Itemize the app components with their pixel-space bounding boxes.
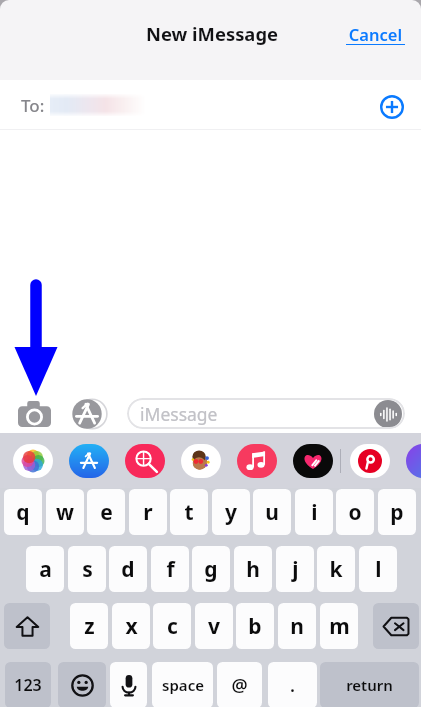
button[interactable]: v	[195, 603, 233, 649]
button[interactable]: j	[276, 546, 314, 592]
button[interactable]: a	[26, 546, 64, 592]
button[interactable]: Backspace	[373, 603, 419, 649]
button[interactable]: o	[336, 489, 374, 535]
staticText: New iMessage	[146, 21, 278, 46]
staticText: v	[208, 612, 220, 641]
button[interactable]	[350, 444, 390, 478]
staticText: m	[329, 612, 350, 641]
button[interactable]: u	[253, 489, 291, 535]
button[interactable]: 123	[5, 662, 51, 707]
button[interactable]: t	[170, 489, 208, 535]
staticText: @	[231, 673, 248, 698]
staticText: i	[311, 498, 318, 527]
staticText: q	[16, 498, 30, 527]
staticText: iMessage	[140, 402, 218, 426]
button[interactable]: Record audio	[374, 400, 402, 428]
staticText: b	[248, 612, 262, 641]
staticText: space	[162, 675, 204, 695]
button[interactable]: return	[320, 662, 419, 707]
staticText: c	[167, 612, 178, 641]
button[interactable]: s	[68, 546, 106, 592]
button[interactable]: Dictation	[110, 662, 147, 707]
button[interactable]	[69, 444, 109, 478]
button[interactable]: d	[109, 546, 147, 592]
staticText: h	[246, 555, 260, 584]
staticText: .	[290, 673, 295, 698]
staticText: j	[292, 555, 299, 584]
button[interactable]: Camera	[16, 396, 52, 432]
staticText: To:	[21, 94, 45, 117]
button[interactable]	[237, 444, 277, 478]
button[interactable]: e	[87, 489, 125, 535]
button[interactable]	[181, 444, 221, 478]
button[interactable]: x	[112, 603, 150, 649]
button[interactable]: b	[236, 603, 274, 649]
button[interactable]: z	[70, 603, 108, 649]
staticText: z	[84, 612, 95, 641]
button[interactable]: r	[129, 489, 167, 535]
button[interactable]: f	[151, 546, 189, 592]
button[interactable]: space	[152, 662, 213, 707]
staticText: a	[39, 555, 52, 584]
button[interactable]: iMessage	[127, 398, 405, 429]
staticText: w	[56, 498, 74, 527]
button[interactable]	[125, 444, 165, 478]
button[interactable]: h	[234, 546, 272, 592]
button[interactable]: l	[359, 546, 397, 592]
button[interactable]: Emoji keyboard	[58, 662, 106, 707]
staticText: u	[265, 498, 279, 527]
button[interactable]	[13, 444, 53, 478]
button[interactable]	[406, 444, 421, 478]
staticText: o	[348, 498, 362, 527]
button[interactable]: @	[217, 662, 262, 707]
staticText: d	[121, 555, 135, 584]
staticText: return	[346, 675, 393, 695]
staticText: k	[329, 555, 343, 584]
staticText: p	[390, 498, 404, 527]
staticText: 123	[14, 674, 42, 696]
staticText: x	[125, 612, 138, 641]
staticText: y	[225, 498, 237, 527]
button[interactable]: m	[320, 603, 358, 649]
button[interactable]: n	[278, 603, 316, 649]
button[interactable]: q	[4, 489, 42, 535]
staticText: l	[375, 555, 382, 584]
button[interactable]: App Store	[71, 396, 107, 432]
staticText: g	[204, 555, 218, 584]
staticText: t	[184, 498, 194, 527]
staticText: r	[143, 498, 153, 527]
button[interactable]	[293, 444, 333, 478]
button[interactable]: c	[153, 603, 191, 649]
staticText: e	[100, 498, 113, 527]
button[interactable]: Cancel	[345, 23, 406, 47]
button[interactable]: i	[295, 489, 333, 535]
staticText: n	[290, 612, 304, 641]
button[interactable]: Shift	[4, 603, 50, 649]
staticText: f	[166, 555, 175, 584]
button[interactable]: g	[192, 546, 230, 592]
button[interactable]: .	[268, 662, 317, 707]
button[interactable]: Add contact	[377, 92, 407, 122]
button[interactable]: k	[317, 546, 355, 592]
staticText: s	[82, 555, 93, 584]
staticText: Cancel	[345, 23, 406, 45]
button[interactable]: y	[212, 489, 250, 535]
button[interactable]: p	[378, 489, 416, 535]
button[interactable]: w	[46, 489, 84, 535]
